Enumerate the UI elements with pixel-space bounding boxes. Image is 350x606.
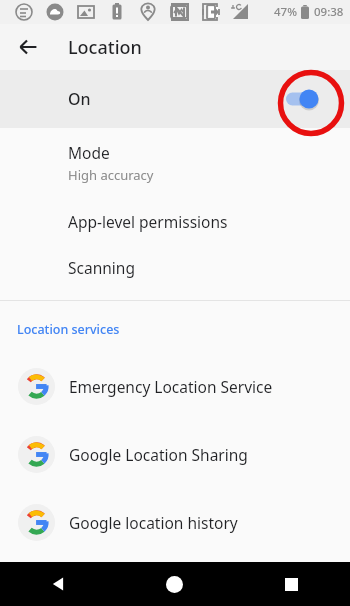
staticText: Scanning: [68, 257, 135, 278]
staticText: Location: [68, 35, 142, 60]
staticText: High accuracy: [68, 166, 154, 184]
button[interactable]: App-level permissions: [0, 198, 350, 244]
button[interactable]: Recent apps: [233, 562, 350, 606]
staticText: Location services: [17, 321, 120, 338]
button[interactable]: Emergency Location Service: [0, 352, 350, 420]
button[interactable]: Back: [0, 562, 116, 606]
button[interactable]: Scanning: [0, 244, 350, 290]
button[interactable]: Location toggle, on: [284, 85, 328, 113]
button[interactable]: Google Location Sharing: [0, 420, 350, 488]
staticText: Emergency Location Service: [69, 376, 273, 397]
staticText: Google Location Sharing: [69, 444, 248, 465]
button[interactable]: Back: [9, 28, 47, 66]
staticText: On: [68, 88, 91, 110]
staticText: App-level permissions: [68, 211, 228, 232]
staticText: Google location history: [69, 512, 238, 533]
staticText: 09:38: [314, 4, 344, 20]
button[interactable]: On: [0, 70, 350, 128]
button[interactable]: Google location history: [0, 488, 350, 556]
button[interactable]: Home: [116, 562, 233, 606]
staticText: 47%: [274, 4, 297, 20]
button[interactable]: Mode: [0, 128, 350, 198]
staticText: Mode: [68, 142, 110, 163]
